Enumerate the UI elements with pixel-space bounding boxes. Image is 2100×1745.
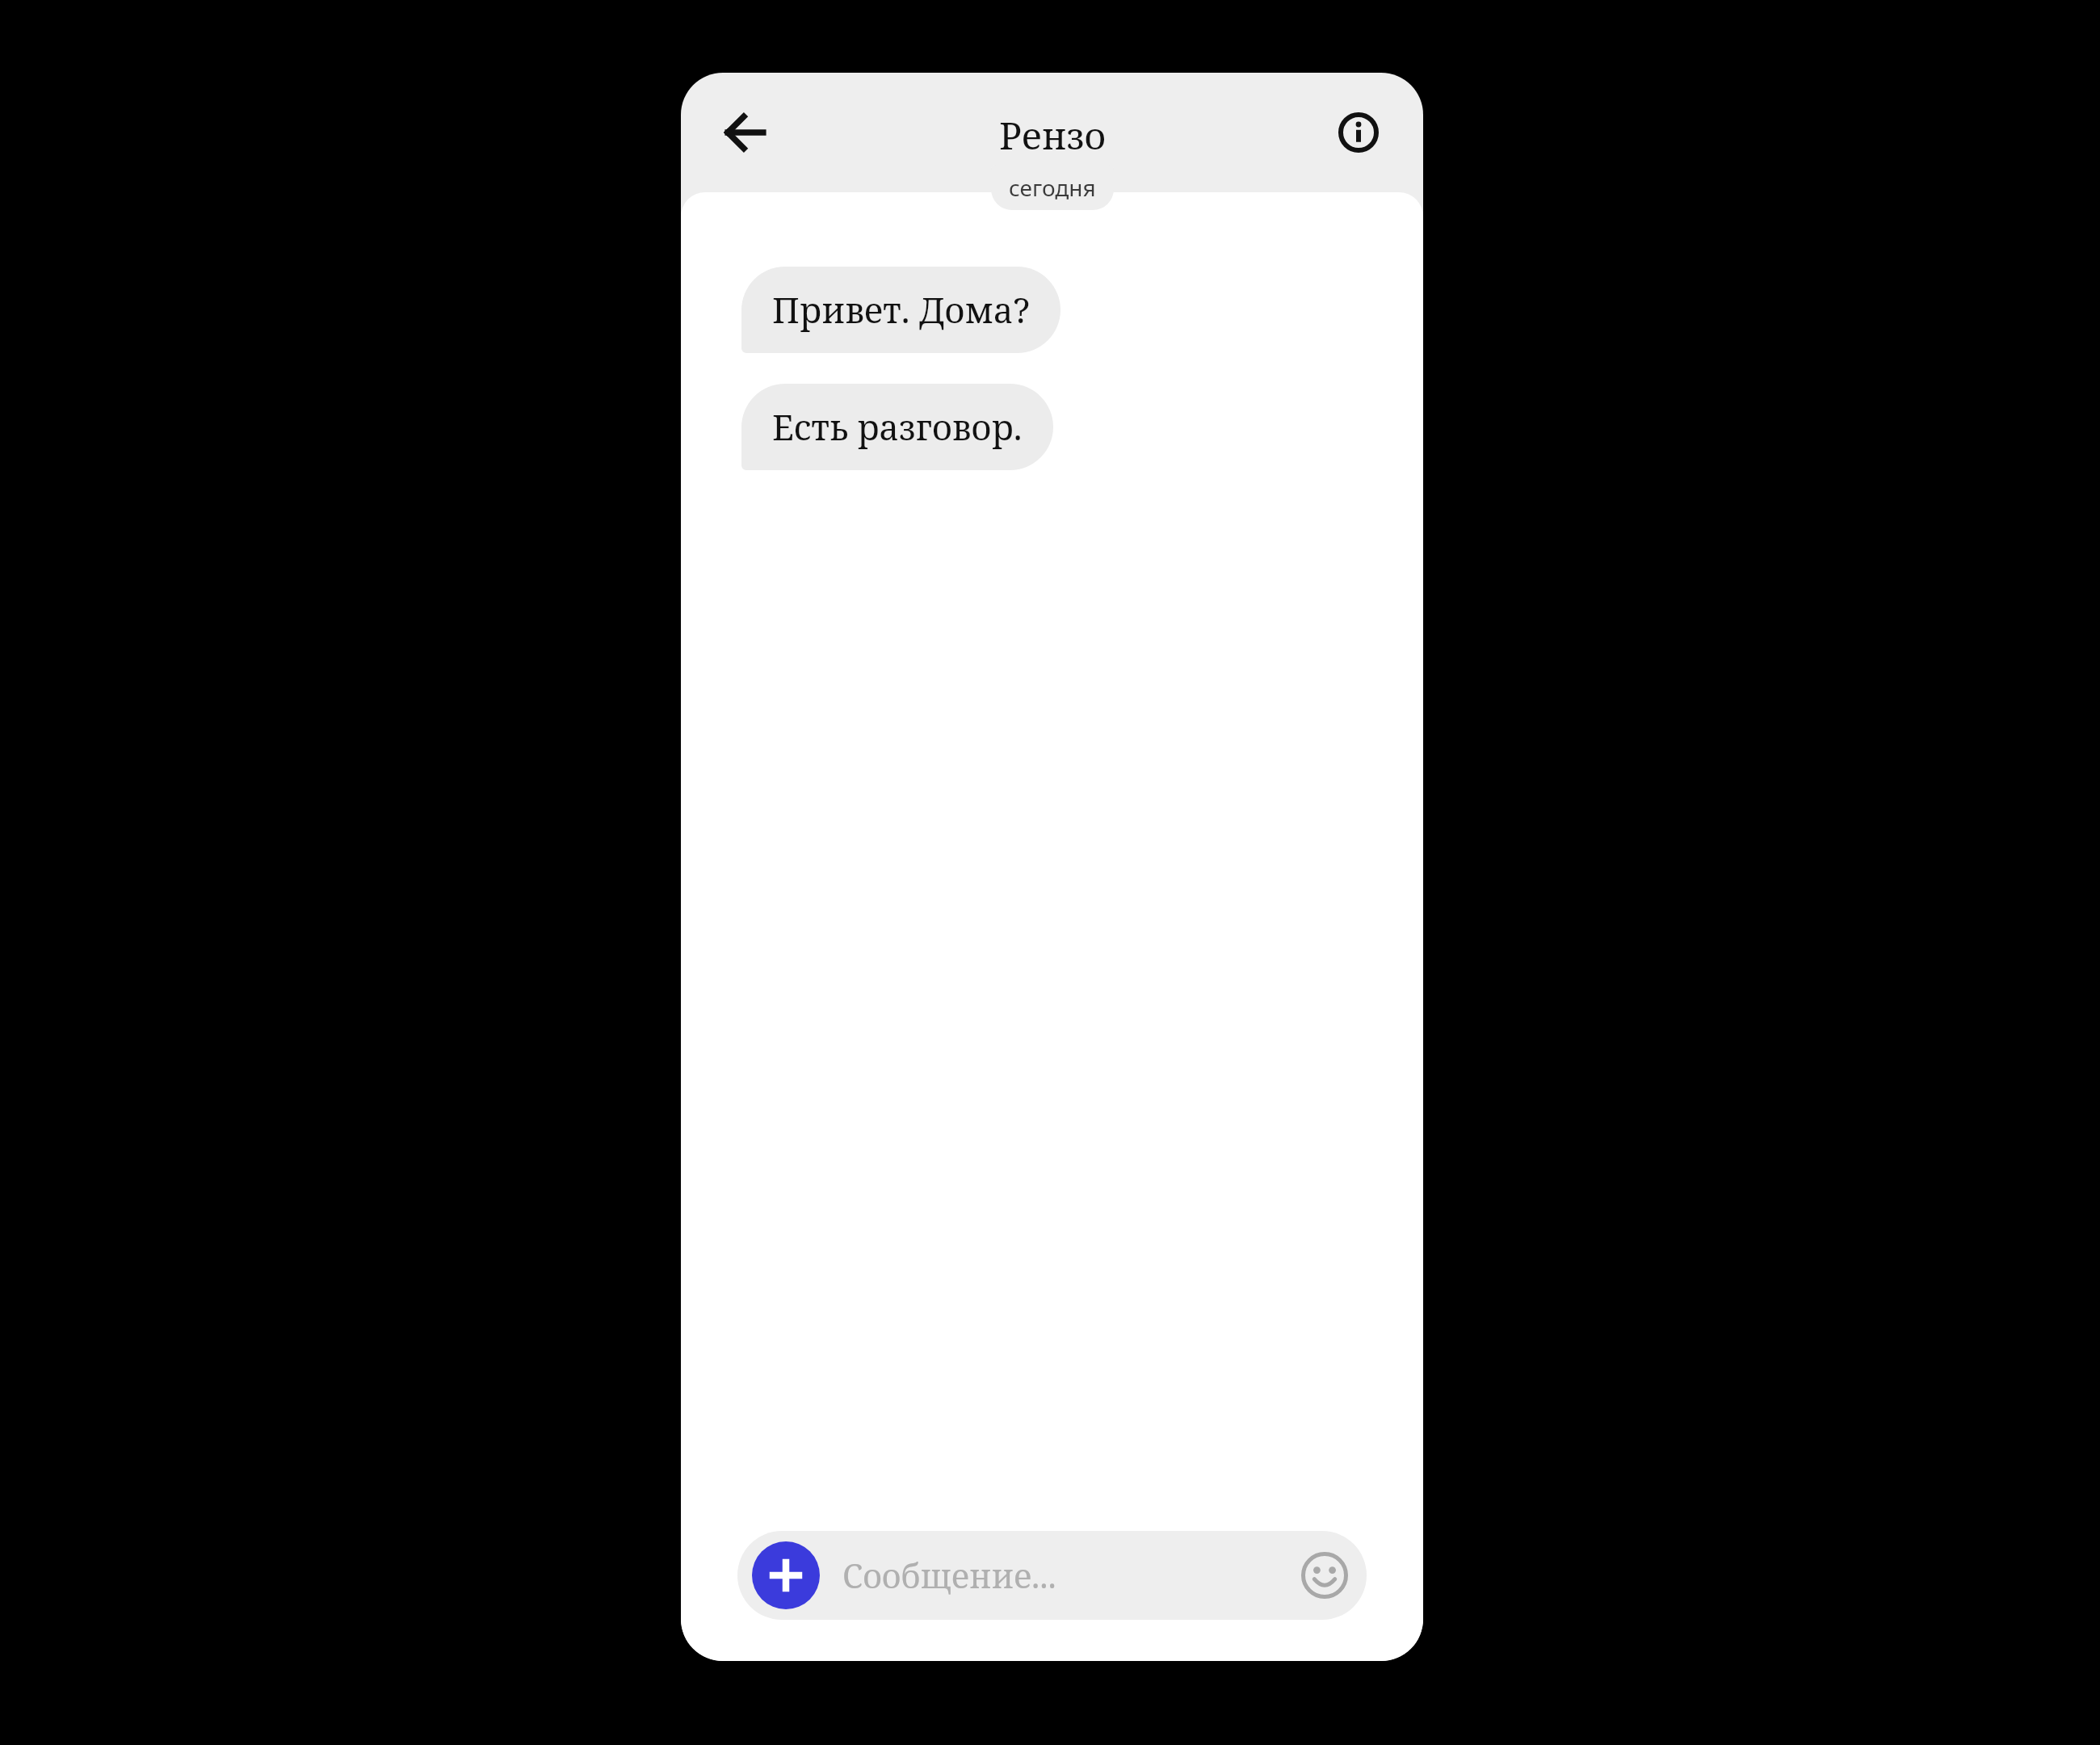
staticText: Есть разговор. — [772, 403, 1023, 451]
button[interactable]: Attach — [752, 1541, 820, 1609]
staticText: сегодня — [1009, 172, 1096, 203]
button[interactable]: Привет. Дома? — [741, 267, 1060, 353]
staticText: Рензо — [999, 110, 1106, 161]
button[interactable]: Есть разговор. — [741, 384, 1053, 470]
staticText: Привет. Дома? — [772, 286, 1030, 334]
button[interactable]: Emoji — [1291, 1541, 1359, 1609]
staticText: Сообщение... — [842, 1553, 1291, 1598]
button[interactable]: Attach — [737, 1531, 1367, 1620]
button[interactable]: Info — [1328, 102, 1389, 163]
button[interactable]: Back — [715, 102, 776, 163]
